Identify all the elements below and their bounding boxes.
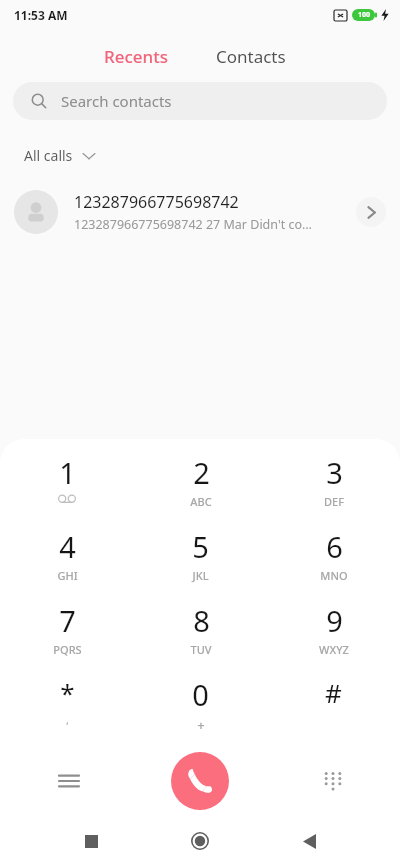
button[interactable]: Recents — [94, 39, 179, 74]
button[interactable]: Contacts — [206, 39, 296, 74]
staticText: All calls — [24, 146, 73, 165]
button[interactable]: 7 — [0, 595, 134, 669]
button[interactable]: 6 — [267, 521, 400, 595]
staticText: JKL — [192, 568, 209, 583]
button[interactable]: Search contacts — [13, 82, 387, 120]
button[interactable]: 1 — [0, 447, 134, 521]
button[interactable]: Keypad — [312, 760, 354, 802]
staticText: 123287966775698742 27 Mar Didn't co… — [74, 216, 312, 233]
button[interactable]: # — [267, 669, 400, 743]
button[interactable]: * — [0, 669, 134, 743]
staticText: 2 — [193, 453, 210, 492]
button[interactable]: 3 — [267, 447, 400, 521]
button[interactable]: 5 — [134, 521, 267, 595]
staticText: Recents — [104, 45, 169, 68]
button[interactable]: 8 — [134, 595, 267, 669]
button[interactable]: 4 — [0, 521, 134, 595]
staticText: ABC — [190, 494, 212, 509]
staticText: Search contacts — [61, 91, 172, 111]
staticText: 11:53 AM — [14, 7, 68, 23]
button[interactable]: More options — [48, 760, 90, 802]
button[interactable]: All calls — [14, 140, 105, 171]
button[interactable]: Call details — [356, 197, 386, 227]
staticText: , — [66, 712, 69, 727]
staticText: # — [325, 675, 342, 710]
button[interactable]: Home — [179, 820, 221, 862]
button[interactable]: 0 — [134, 669, 267, 743]
staticText: 1 — [59, 453, 76, 492]
staticText: 3 — [326, 453, 343, 492]
staticText: 4 — [59, 527, 76, 566]
staticText: MNO — [320, 568, 348, 583]
button[interactable]: 123287966775698742 — [0, 183, 400, 241]
staticText: PQRS — [53, 642, 82, 657]
staticText: Contacts — [216, 45, 286, 68]
staticText: 0 — [192, 675, 209, 714]
staticText: 6 — [326, 527, 343, 566]
staticText: 123287966775698742 — [74, 191, 239, 213]
staticText: + — [197, 716, 205, 734]
button[interactable]: 2 — [134, 447, 267, 521]
staticText: 7 — [59, 601, 76, 640]
staticText: 5 — [192, 527, 209, 566]
staticText: 9 — [326, 601, 343, 640]
staticText: TUV — [190, 642, 212, 657]
staticText: 100 — [358, 10, 371, 20]
staticText: * — [60, 675, 75, 710]
button[interactable]: 9 — [267, 595, 400, 669]
staticText: WXYZ — [319, 642, 349, 657]
button[interactable]: Call — [171, 752, 229, 810]
staticText: GHI — [57, 568, 78, 583]
button[interactable]: Back — [288, 820, 330, 862]
staticText: 8 — [193, 601, 210, 640]
button[interactable]: Recent apps — [70, 820, 112, 862]
staticText: DEF — [324, 494, 344, 509]
